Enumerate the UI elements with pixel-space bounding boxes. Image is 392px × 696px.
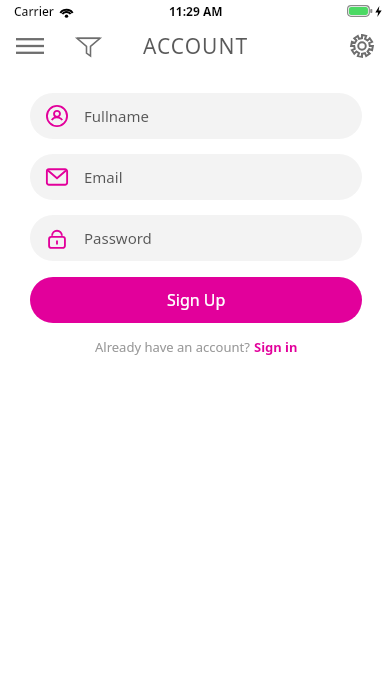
staticText: Password — [84, 228, 152, 248]
button[interactable]: Filter — [66, 24, 110, 68]
staticText: 11:29 AM — [169, 3, 223, 19]
staticText: Fullname — [84, 106, 149, 126]
staticText: Already have an account? — [95, 338, 254, 356]
button[interactable]: Password — [30, 215, 362, 261]
button[interactable]: Menu — [8, 24, 52, 68]
button[interactable]: Sign in — [254, 338, 298, 356]
button[interactable]: Settings — [340, 24, 384, 68]
staticText: Email — [84, 167, 123, 187]
button[interactable]: Sign Up — [30, 277, 362, 323]
button[interactable]: Fullname — [30, 93, 362, 139]
staticText: Carrier — [14, 3, 54, 19]
staticText: Sign in — [254, 338, 298, 356]
button[interactable]: Email — [30, 154, 362, 200]
staticText: ACCOUNT — [143, 32, 249, 61]
staticText: Sign Up — [167, 289, 226, 311]
